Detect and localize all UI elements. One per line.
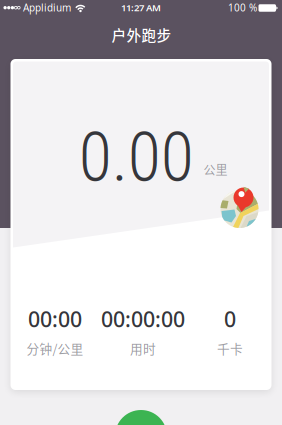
staticText: 0 <box>224 305 236 334</box>
staticText: 0.00 <box>79 118 194 197</box>
staticText: 用时 <box>130 339 156 357</box>
staticText: 公里 <box>203 161 227 178</box>
staticText: 11:27 AM <box>121 1 161 14</box>
staticText: 100 % <box>228 1 257 14</box>
staticText: Applidium <box>23 1 71 14</box>
staticText: 00:00 <box>28 305 82 334</box>
staticText: 千卡 <box>217 339 243 357</box>
staticText: 00:00:00 <box>101 305 185 334</box>
button[interactable]: 查看地图 <box>220 190 258 228</box>
staticText: 分钟/公里 <box>26 339 83 357</box>
staticText: 户外跑步 <box>111 24 171 45</box>
button[interactable]: 开始跑步 <box>115 410 167 425</box>
